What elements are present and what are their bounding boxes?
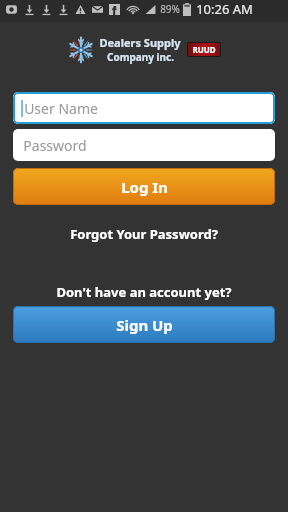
staticText: Dealers Supply bbox=[99, 35, 181, 50]
staticText: 10:26 AM bbox=[196, 0, 253, 18]
staticText: Company inc. bbox=[107, 50, 174, 64]
staticText: 89% bbox=[160, 2, 180, 16]
button[interactable]: User Name bbox=[13, 92, 275, 124]
staticText: Forgot Your Password? bbox=[70, 225, 218, 243]
staticText: Sign Up bbox=[116, 315, 173, 335]
button[interactable]: Log In bbox=[13, 168, 275, 205]
staticText: Password bbox=[23, 136, 87, 155]
staticText: Don't have an account yet? bbox=[56, 283, 232, 301]
button[interactable]: Sign Up bbox=[13, 306, 275, 343]
staticText: Log In bbox=[121, 177, 168, 197]
staticText: RUUD bbox=[192, 44, 216, 55]
button[interactable]: Forgot Your Password? bbox=[0, 225, 288, 243]
button[interactable]: Password bbox=[13, 129, 275, 161]
staticText: User Name bbox=[24, 99, 98, 118]
